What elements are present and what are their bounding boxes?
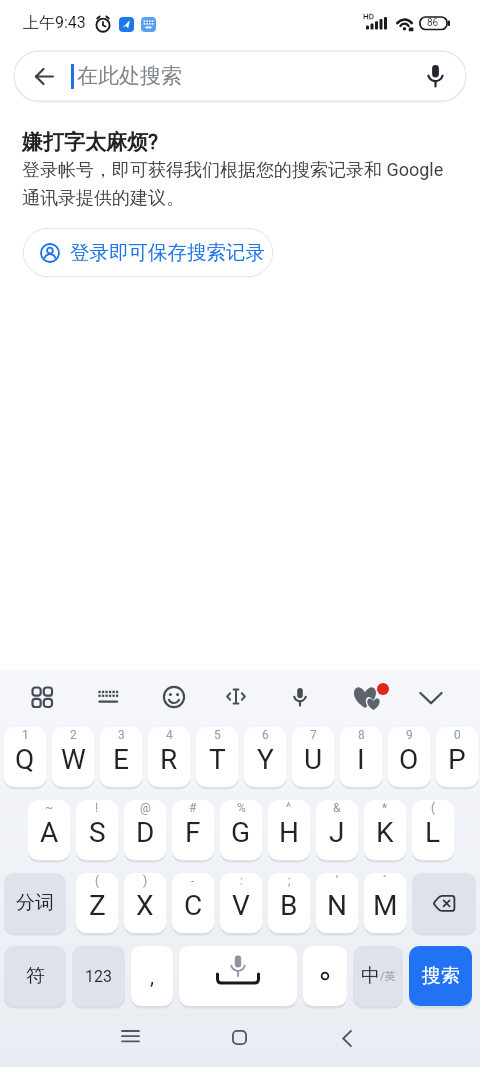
staticText: &	[333, 801, 341, 815]
staticText: 9	[406, 728, 413, 742]
staticText: 4	[166, 728, 173, 742]
button[interactable]: 搜索	[409, 946, 472, 1006]
button[interactable]: -	[172, 873, 214, 933]
button[interactable]: ^	[268, 800, 310, 860]
staticText: 3	[118, 728, 125, 742]
staticText: ;	[288, 874, 291, 888]
button[interactable]: `	[364, 873, 406, 933]
button[interactable]	[303, 946, 347, 1006]
staticText: /英	[380, 969, 396, 983]
staticText: 在此处搜索	[77, 63, 182, 89]
staticText: 86	[427, 17, 439, 29]
button[interactable]: (	[412, 800, 454, 860]
button[interactable]: *	[364, 800, 406, 860]
button[interactable]: 登录即可保存搜索记录	[23, 228, 273, 277]
staticText: W	[61, 743, 86, 776]
button[interactable]	[224, 685, 248, 709]
button[interactable]: '	[316, 873, 358, 933]
button[interactable]: !	[76, 800, 118, 860]
staticText: U	[304, 743, 323, 776]
button[interactable]: &	[316, 800, 358, 860]
button[interactable]: 中	[353, 946, 403, 1006]
staticText: 分词	[16, 891, 54, 915]
staticText: N	[327, 889, 347, 922]
button[interactable]: 在此处搜索	[14, 51, 466, 101]
button[interactable]: 1	[4, 727, 46, 787]
staticText: 搜索	[422, 964, 460, 988]
staticText: !	[95, 801, 99, 815]
button[interactable]: 7	[292, 727, 334, 787]
button[interactable]: ~	[28, 800, 70, 860]
button[interactable]: @	[124, 800, 166, 860]
button[interactable]: 3	[100, 727, 142, 787]
button[interactable]: 123	[72, 946, 125, 1006]
staticText: X	[136, 889, 154, 922]
staticText: Z	[89, 889, 106, 922]
staticText: HD	[363, 12, 374, 21]
staticText: #	[189, 801, 197, 815]
staticText: ~	[45, 801, 54, 815]
button[interactable]: 4	[148, 727, 190, 787]
button[interactable]	[412, 873, 476, 933]
staticText: Q	[15, 743, 35, 776]
button[interactable]: 2	[52, 727, 94, 787]
button[interactable]: 0	[436, 727, 478, 787]
staticText: ^	[286, 801, 292, 815]
staticText: L	[425, 816, 441, 849]
button[interactable]	[122, 1030, 139, 1043]
button[interactable]	[162, 685, 186, 709]
staticText: 符	[26, 964, 45, 988]
staticText: 5	[214, 728, 221, 742]
button[interactable]: (	[76, 873, 118, 933]
button[interactable]	[232, 1030, 247, 1045]
button[interactable]	[342, 1030, 352, 1047]
button[interactable]	[179, 946, 297, 1006]
staticText: 1	[22, 728, 29, 742]
staticText: 8	[358, 728, 365, 742]
staticText: E	[113, 743, 129, 776]
button[interactable]: 9	[388, 727, 430, 787]
staticText: )	[143, 874, 148, 888]
staticText: (	[95, 874, 100, 888]
button[interactable]	[96, 685, 120, 709]
staticText: H	[279, 816, 299, 849]
staticText: -	[191, 874, 195, 888]
button[interactable]: :	[220, 873, 262, 933]
button[interactable]: ,	[131, 946, 173, 1006]
staticText: T	[209, 743, 226, 776]
staticText: 中	[361, 964, 380, 988]
button[interactable]: 分词	[4, 873, 66, 933]
button[interactable]: 6	[244, 727, 286, 787]
staticText: B	[280, 889, 298, 922]
staticText: 0	[454, 728, 461, 742]
button[interactable]: )	[124, 873, 166, 933]
staticText: S	[89, 816, 106, 849]
staticText: V	[232, 889, 250, 922]
button[interactable]	[350, 676, 390, 714]
staticText: P	[448, 743, 466, 776]
staticText: A	[40, 816, 59, 849]
button[interactable]: 8	[340, 727, 382, 787]
staticText: *	[382, 801, 388, 815]
staticText: '	[336, 874, 339, 888]
staticText: 上午9:43	[23, 13, 86, 33]
staticText: Y	[257, 743, 274, 776]
button[interactable]: 符	[4, 946, 66, 1006]
button[interactable]	[419, 685, 443, 709]
staticText: I	[357, 743, 365, 776]
staticText: `	[383, 874, 387, 888]
button[interactable]	[30, 685, 54, 709]
button[interactable]: 5	[196, 727, 238, 787]
staticText: :	[240, 874, 243, 888]
staticText: D	[136, 816, 155, 849]
button[interactable]	[288, 685, 312, 709]
button[interactable]: #	[172, 800, 214, 860]
staticText: O	[399, 743, 419, 776]
staticText: J	[329, 816, 345, 849]
button[interactable]: ;	[268, 873, 310, 933]
staticText: R	[160, 743, 178, 776]
staticText: 登录即可保存搜索记录	[70, 240, 265, 265]
button[interactable]: %	[220, 800, 262, 860]
staticText: @	[140, 801, 151, 815]
staticText: 7	[310, 728, 317, 742]
